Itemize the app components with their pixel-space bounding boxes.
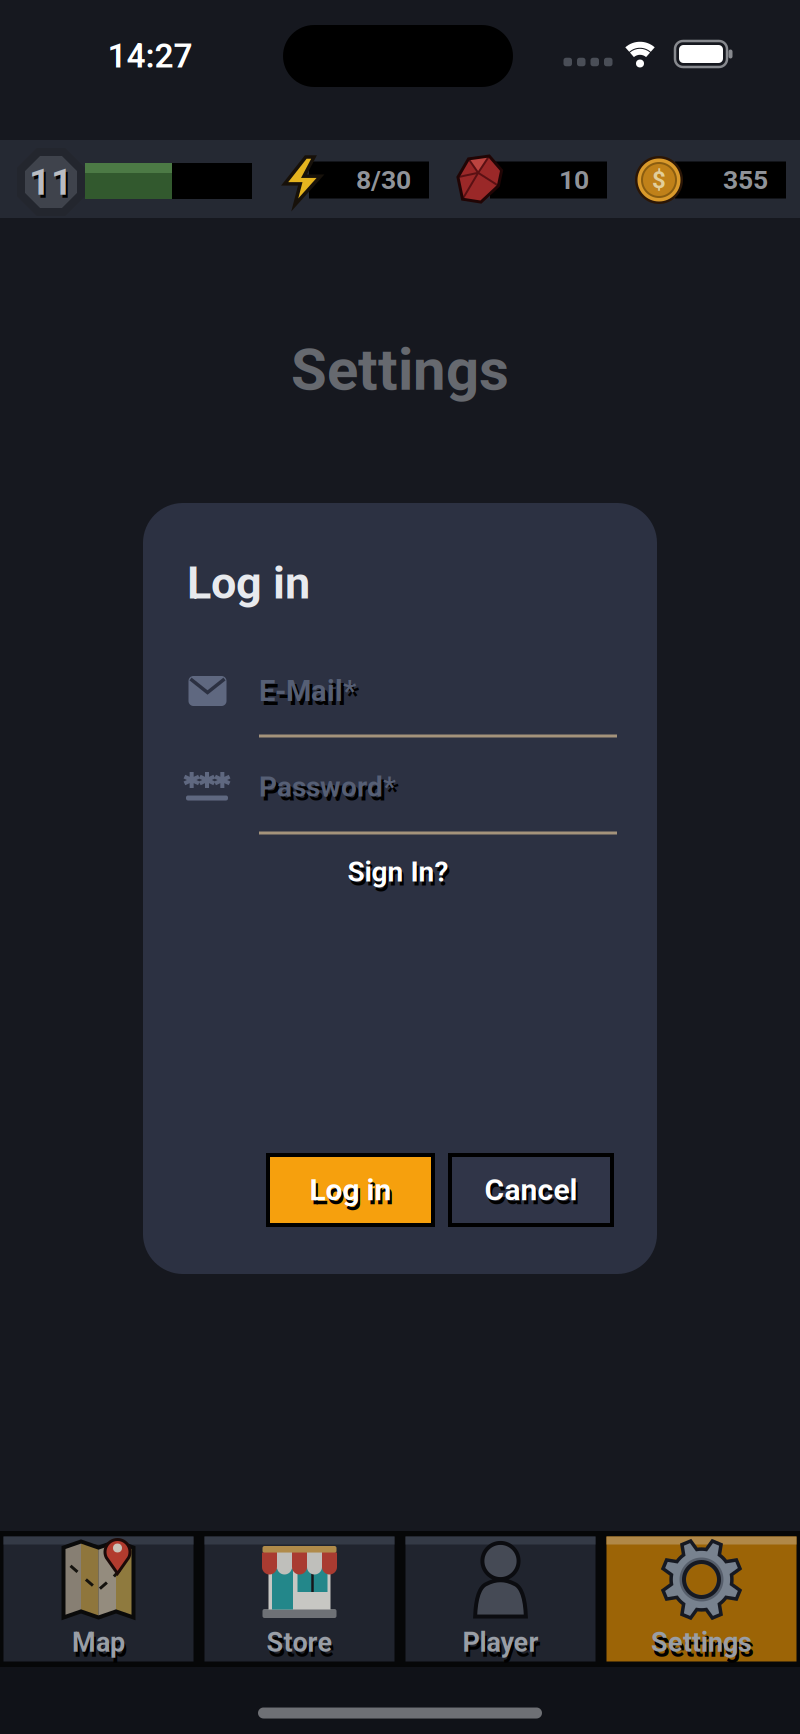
staticText: E-Mail* [259,674,356,708]
staticText: Sign In? [347,856,448,888]
button[interactable]: Store [204,1536,394,1661]
staticText: Settings [653,1632,754,1663]
staticText: Store [266,1627,332,1658]
button[interactable]: Settings [606,1536,796,1661]
staticText: 355 [723,164,768,195]
staticText: Password* [259,771,396,803]
staticText: Player [464,1632,540,1663]
button[interactable]: Sign In? [347,856,448,888]
staticText: Cancel [484,1172,577,1208]
staticText: Log in [311,1176,393,1212]
staticText: 8/30 [356,164,411,195]
staticText: Cancel [486,1176,579,1212]
button[interactable]: Cancel [448,1153,614,1227]
button[interactable]: Log in [266,1153,435,1227]
button[interactable]: Map [3,1536,193,1661]
staticText: 10 [559,164,589,195]
staticText: 11 [29,160,73,204]
staticText: Sign In? [349,860,450,892]
staticText: Store [268,1632,334,1663]
staticText: Player [462,1627,538,1658]
staticText: Password* [262,775,399,807]
staticText: 14:27 [107,36,192,76]
staticText: Map [72,1627,125,1658]
staticText: $ [652,166,666,194]
staticText: E-Mail* [262,678,359,712]
staticText: Log in [309,1172,391,1208]
staticText: Log in [187,557,310,609]
button[interactable]: Player [405,1536,595,1661]
staticText: Settings [651,1627,752,1658]
staticText: Settings [291,336,509,404]
staticText: Map [74,1632,127,1663]
staticText: 11 [31,163,75,207]
